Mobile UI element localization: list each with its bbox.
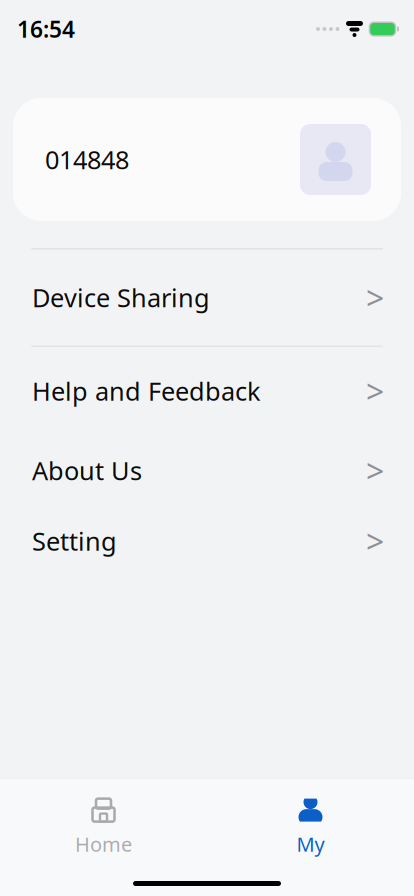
staticText: 014848 [45,143,129,176]
staticText: Device Sharing [32,281,210,314]
button[interactable]: Home [0,779,207,857]
button[interactable]: About Us [0,435,414,506]
staticText: > [366,276,384,319]
staticText: 16:54 [17,14,75,44]
staticText: Home [75,831,132,857]
staticText: > [366,370,384,412]
button[interactable]: Device Sharing [0,249,414,345]
staticText: My [296,831,324,857]
staticText: Help and Feedback [32,374,261,408]
staticText: Setting [32,524,117,558]
staticText: > [366,520,384,562]
staticText: > [366,449,384,492]
button[interactable]: Help and Feedback [0,347,414,435]
button[interactable]: My [207,779,414,857]
staticText: About Us [32,454,142,487]
button[interactable]: Setting [0,506,414,576]
